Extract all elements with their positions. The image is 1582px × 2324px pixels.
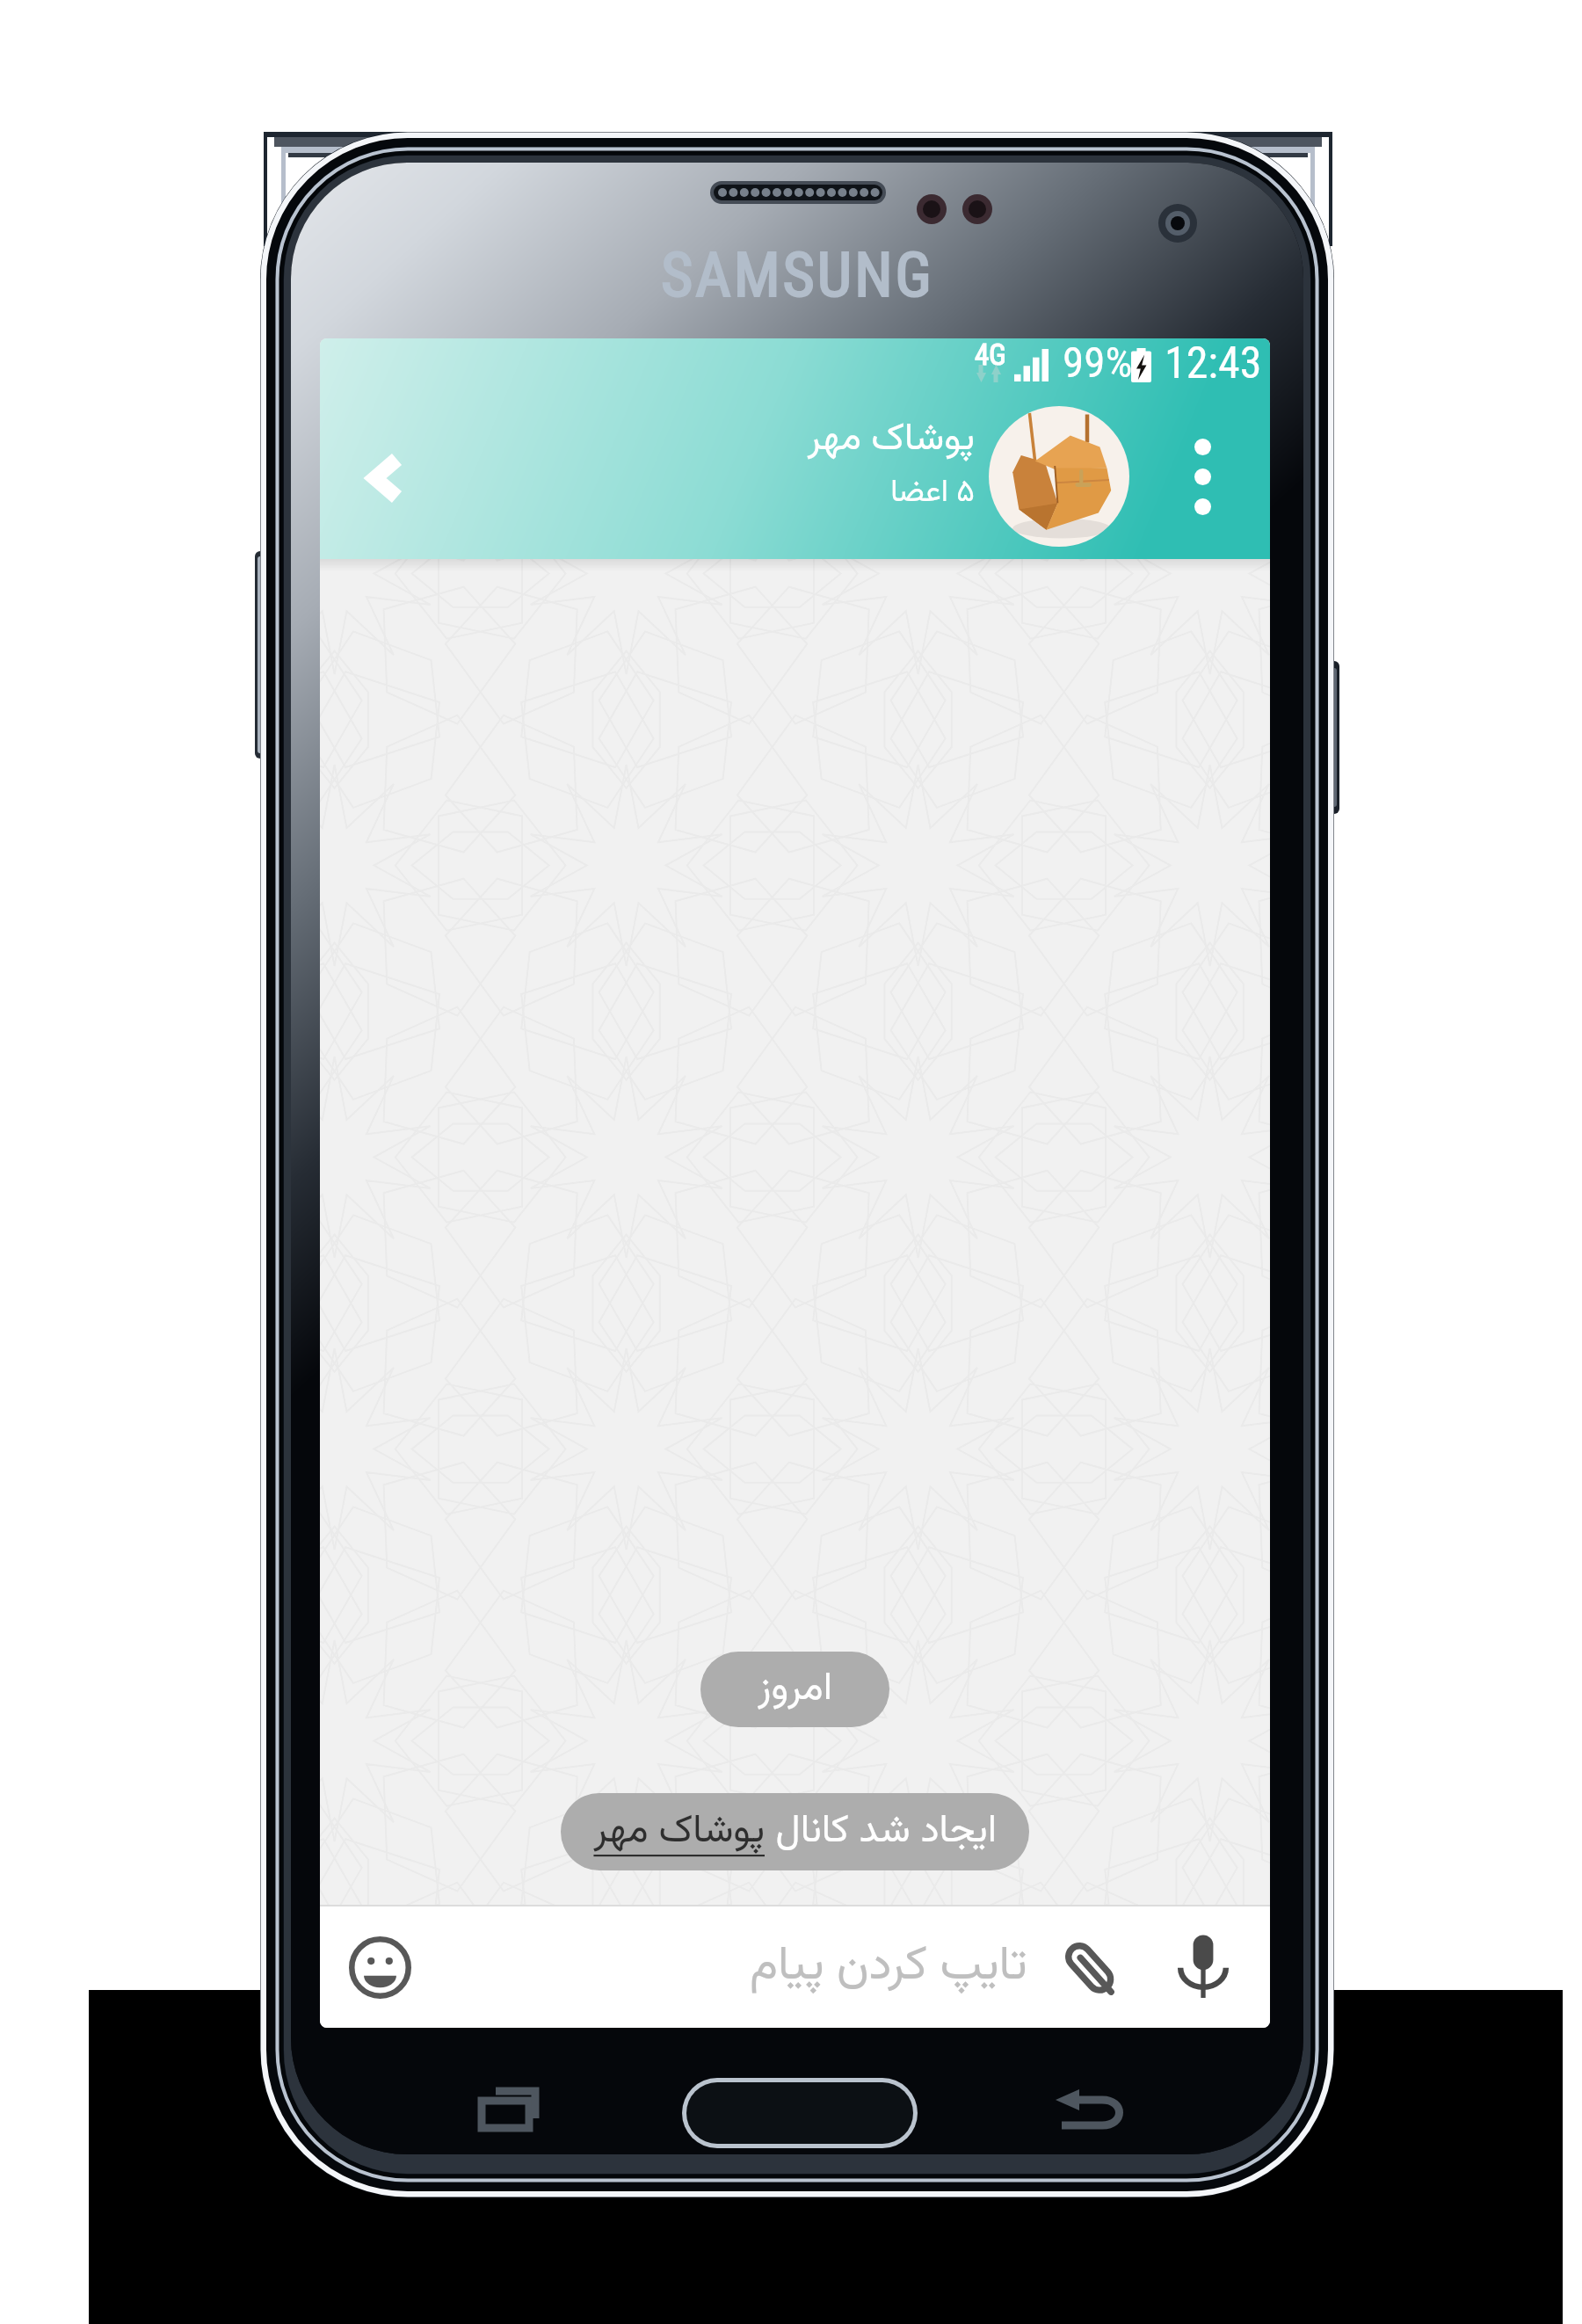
staticText: ۵ اعضا [890,469,975,518]
staticText: 4G [975,338,1006,372]
staticText: 99% [1063,338,1133,388]
staticText: تایپ کردن پیام [750,1930,1027,2004]
button[interactable]: Emoji [336,1923,424,2011]
staticText: ایجاد شد کانال [775,1802,997,1863]
button[interactable]: امروز [700,1652,889,1727]
staticText: امروز [758,1659,832,1720]
staticText: پوشاک مهر [593,1802,765,1863]
button[interactable]: Record voice message [1159,1923,1247,2011]
button[interactable]: Attach file [1049,1923,1136,2011]
button[interactable]: ایجاد شد کانال [561,1793,1029,1870]
button[interactable]: Back [333,425,439,531]
button[interactable]: More options [1150,424,1255,529]
staticText: 12:43 [1165,338,1262,389]
staticText: SAMSUNG [661,239,934,311]
staticText: پوشاک مهر [807,410,975,469]
button[interactable]: Channel avatar [989,406,1129,547]
